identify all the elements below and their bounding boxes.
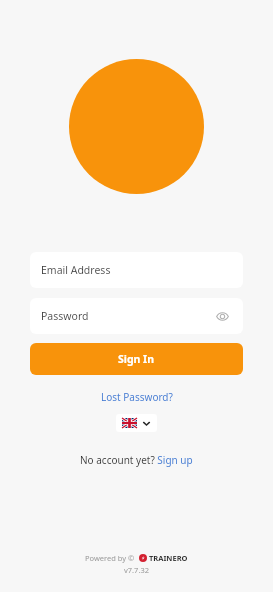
button[interactable]: Sign In [30, 343, 243, 375]
staticText: Password [41, 309, 89, 323]
button[interactable]: Lost Password? [97, 388, 177, 406]
staticText: No account yet? Sign up [80, 453, 193, 467]
button[interactable]: No account yet? Sign up [78, 451, 195, 469]
button[interactable]: Select language [116, 414, 157, 432]
button[interactable]: Email Address [30, 252, 243, 288]
button[interactable]: Password [30, 298, 243, 334]
staticText: Lost Password? [101, 390, 173, 404]
staticText: Sign In [118, 352, 155, 366]
staticText: TRAINERO [149, 553, 188, 563]
staticText: v7.7.32 [124, 565, 149, 575]
staticText: Powered by © [85, 553, 135, 563]
staticText: Email Address [41, 263, 111, 277]
button[interactable]: Show password [212, 306, 232, 326]
